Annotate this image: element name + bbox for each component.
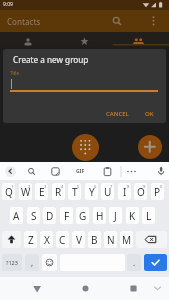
staticText: 5 [77,184,80,190]
button[interactable]: V [72,231,85,248]
staticText: G [79,209,87,223]
staticText: GIF [76,168,85,175]
button[interactable]: ?123 [2,254,22,271]
button[interactable]: C [56,231,69,248]
staticText: E [39,185,45,199]
button[interactable] [144,254,167,271]
button[interactable]: CANCEL [99,107,135,120]
staticText: Contacts [7,16,41,27]
button[interactable] [2,231,21,248]
staticText: R [55,185,62,199]
button[interactable]: U [101,183,114,200]
staticText: U [104,185,112,199]
button[interactable] [151,281,164,294]
staticText: 9 [143,184,146,190]
button[interactable]: L [142,207,155,224]
staticText: F [64,209,70,223]
button[interactable]: R [52,183,65,200]
button[interactable] [102,166,113,177]
button[interactable]: B [88,231,101,248]
staticText: N [107,233,115,247]
button[interactable] [5,166,16,177]
staticText: 3 [44,184,47,190]
staticText: 8 [127,184,130,190]
button[interactable] [125,166,138,177]
button[interactable]: N [104,231,117,248]
staticText: 1 [11,184,14,190]
staticText: W [21,185,31,199]
button[interactable] [0,32,56,46]
button[interactable] [28,279,47,298]
button[interactable] [56,32,112,46]
button[interactable] [124,279,143,298]
staticText: T [72,185,78,199]
button[interactable]: H [93,207,106,224]
staticText: 9:09 [3,1,13,8]
button[interactable] [42,254,57,271]
button[interactable] [112,32,169,46]
staticText: 4 [61,184,64,190]
button[interactable] [155,165,167,177]
staticText: A [13,209,20,223]
staticText: , [31,257,34,268]
button[interactable]: T [68,183,81,200]
staticText: P [154,185,161,199]
button[interactable] [26,166,37,177]
staticText: 6 [94,184,97,190]
button[interactable]: I [118,183,131,200]
button[interactable]: S [27,207,40,224]
staticText: Q [5,185,13,199]
button[interactable] [76,279,95,298]
button[interactable]: D [43,207,56,224]
staticText: B [91,233,98,247]
staticText: S [31,209,37,223]
staticText: OK [145,110,154,118]
button[interactable] [147,14,160,27]
button[interactable]: Z [24,231,37,248]
staticText: M [122,233,132,247]
staticText: K [129,209,136,223]
staticText: . [133,257,136,268]
staticText: I [123,185,127,199]
staticText: X [44,233,50,247]
staticText: Z [28,233,34,247]
button[interactable]: E [35,183,48,200]
staticText: ?123 [6,259,18,266]
staticText: V [76,233,82,247]
staticText: D [46,209,54,223]
button[interactable]: . [127,254,141,271]
staticText: L [146,209,152,223]
button[interactable]: J [109,207,122,224]
button[interactable]: , [25,254,39,271]
button[interactable]: Y [85,183,98,200]
button[interactable] [72,134,99,161]
staticText: Y [89,185,95,199]
button[interactable]: P [151,183,164,200]
button[interactable]: O [134,183,147,200]
staticText: O [137,185,145,199]
button[interactable] [50,166,61,177]
staticText: Create a new group [13,54,89,65]
staticText: C [59,233,66,247]
button[interactable]: F [60,207,73,224]
button[interactable] [136,231,167,248]
button[interactable]: M [120,231,133,248]
button[interactable]: X [40,231,53,248]
staticText: CANCEL [106,110,129,118]
button[interactable]: OK [138,107,160,120]
staticText: J [114,209,117,223]
staticText: 0 [160,184,163,190]
button[interactable]: W [19,183,32,200]
button[interactable]: GIF [72,166,88,177]
button[interactable]: Q [2,183,15,200]
staticText: 2 [28,184,31,190]
button[interactable]: G [76,207,89,224]
staticText: Title [10,70,19,76]
staticText: H [96,209,104,223]
button[interactable] [110,14,124,28]
button[interactable]: K [126,207,139,224]
button[interactable]: A [10,207,23,224]
button[interactable] [138,135,162,159]
staticText: 7 [110,184,113,190]
